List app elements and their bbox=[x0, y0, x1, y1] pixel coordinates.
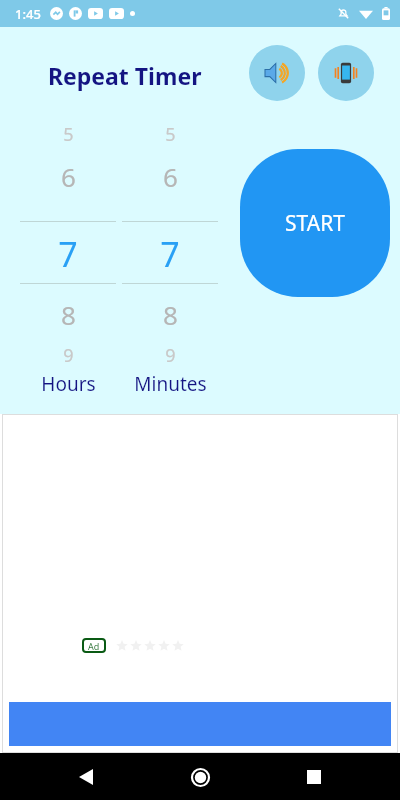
button[interactable]: Recent apps bbox=[294, 757, 334, 797]
staticText: 9 bbox=[165, 343, 176, 368]
staticText: 6 bbox=[61, 159, 76, 194]
button[interactable]: Sound bbox=[249, 45, 305, 101]
staticText: Hours bbox=[41, 371, 96, 397]
staticText: 5 bbox=[165, 122, 176, 147]
button[interactable]: 5 bbox=[18, 97, 118, 407]
staticText: 7 bbox=[160, 231, 180, 277]
staticText: 6 bbox=[163, 159, 178, 194]
button[interactable]: START bbox=[240, 149, 390, 297]
button[interactable]: Vibrate bbox=[318, 45, 374, 101]
button[interactable]: 5 bbox=[120, 97, 220, 407]
button[interactable] bbox=[2, 414, 398, 753]
staticText: 1:45 bbox=[15, 5, 41, 23]
staticText: 7 bbox=[58, 231, 78, 277]
staticText: 8 bbox=[163, 297, 178, 332]
staticText: START bbox=[285, 209, 345, 238]
staticText: Minutes bbox=[134, 371, 207, 397]
staticText: 9 bbox=[63, 343, 74, 368]
staticText: 8 bbox=[61, 297, 76, 332]
staticText: Ad bbox=[88, 640, 100, 652]
button[interactable]: Back bbox=[66, 757, 106, 797]
button[interactable]: Home bbox=[180, 757, 220, 797]
staticText: Repeat Timer bbox=[48, 60, 202, 91]
staticText: 5 bbox=[63, 122, 74, 147]
